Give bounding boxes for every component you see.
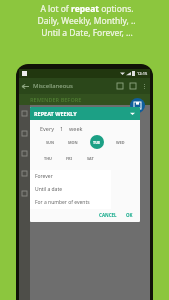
button[interactable]: Until a date xyxy=(30,183,111,196)
button[interactable]: Location xyxy=(20,149,29,158)
button[interactable]: Lists xyxy=(20,189,29,198)
staticText: Every xyxy=(40,125,55,132)
button[interactable]: More options xyxy=(140,82,148,90)
staticText: SUN xyxy=(46,140,55,145)
staticText: Miscellaneous xyxy=(33,82,73,90)
staticText: FRI xyxy=(66,156,73,161)
button[interactable]: FRI xyxy=(62,151,76,165)
staticText: For a number of events xyxy=(35,199,90,206)
staticText: week xyxy=(69,125,83,132)
staticText: Until a Date, Forever, ... xyxy=(41,27,133,39)
staticText: Daily, Weekly, Monthly, .. xyxy=(37,15,136,27)
button[interactable]: REPEAT WEEKLY xyxy=(30,107,140,120)
staticText: 1 xyxy=(60,125,64,132)
staticText: MON xyxy=(68,140,78,145)
button[interactable]: SUN xyxy=(43,135,57,149)
staticText: Forever xyxy=(35,173,53,180)
button[interactable]: 1 xyxy=(60,125,64,132)
button[interactable]: Starred xyxy=(20,169,29,178)
staticText: WED xyxy=(116,140,125,145)
staticText: TUE xyxy=(93,140,101,145)
staticText: REPEAT WEEKLY xyxy=(34,110,77,117)
staticText: OK xyxy=(126,212,133,218)
staticText: Until a date xyxy=(35,186,63,193)
button[interactable]: Calendar xyxy=(20,129,29,138)
button[interactable]: OK xyxy=(124,210,135,220)
button[interactable]: MON xyxy=(66,135,80,149)
button[interactable]: Forever xyxy=(30,170,111,183)
staticText: A lot of repeat options. xyxy=(40,3,134,15)
staticText: CANCEL xyxy=(99,212,117,218)
staticText: SAT xyxy=(87,156,94,161)
staticText: 12:15 xyxy=(137,71,148,76)
button[interactable]: TUE xyxy=(90,135,104,149)
button[interactable]: For a number of events xyxy=(30,196,111,209)
button[interactable]: WED xyxy=(113,135,127,149)
button[interactable]: SAT xyxy=(83,151,97,165)
button[interactable]: Calendar xyxy=(116,82,124,90)
button[interactable]: THU xyxy=(41,151,55,165)
staticText: REMINDER BEFORE xyxy=(30,96,82,103)
button[interactable]: Today xyxy=(20,109,29,118)
button[interactable]: List xyxy=(129,82,137,90)
button[interactable]: Save xyxy=(130,98,145,113)
staticText: THU xyxy=(44,156,52,161)
button[interactable]: CANCEL xyxy=(97,210,119,220)
button[interactable]: Back xyxy=(22,83,29,90)
